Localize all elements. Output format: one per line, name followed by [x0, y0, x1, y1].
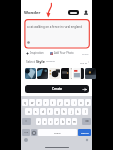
- button[interactable]: h: [61, 108, 67, 115]
- staticText: f: [49, 110, 51, 114]
- button[interactable]: Profile: [83, 10, 89, 16]
- button[interactable]: Create: [25, 85, 89, 93]
- staticText: c: [50, 120, 52, 124]
- staticText: h: [63, 110, 65, 114]
- button[interactable]: n: [66, 118, 71, 125]
- button[interactable]: j: [68, 108, 74, 115]
- staticText: Inspiration: [30, 51, 44, 55]
- staticText: m: [73, 120, 76, 124]
- button[interactable]: z: [36, 118, 41, 125]
- button[interactable]: space: [38, 129, 77, 136]
- staticText: o: [80, 101, 82, 105]
- staticText: ›: [88, 60, 89, 64]
- staticText: u: [66, 101, 68, 105]
- staticText: s: [35, 110, 37, 114]
- staticText: search: [81, 131, 89, 134]
- button[interactable]: [68, 10, 79, 15]
- button[interactable]: v: [54, 118, 59, 125]
- button[interactable]: k: [75, 108, 81, 115]
- staticText: j: [71, 110, 72, 114]
- staticText: a cat walking on a fence in rural englan…: [27, 25, 82, 29]
- button[interactable]: [73, 68, 84, 79]
- staticText: z: [38, 120, 40, 124]
- staticText: x: [44, 120, 46, 124]
- button[interactable]: b: [60, 118, 65, 125]
- staticText: ⌫: [85, 120, 89, 123]
- button[interactable]: [37, 68, 48, 79]
- staticText: 0/300: [82, 52, 89, 55]
- button[interactable]: f: [47, 108, 53, 115]
- button[interactable]: i: [71, 99, 77, 106]
- staticText: w: [31, 101, 34, 105]
- button[interactable]: g: [54, 108, 60, 115]
- staticText: l: [85, 110, 86, 114]
- button[interactable]: Shift: [22, 118, 31, 125]
- staticText: space: [54, 131, 61, 134]
- staticText: e: [38, 101, 40, 105]
- button[interactable]: d: [40, 108, 46, 115]
- button[interactable]: [25, 68, 36, 79]
- button[interactable]: Emoji: [31, 129, 37, 136]
- staticText: p: [87, 101, 89, 105]
- staticText: 123: [24, 131, 28, 134]
- button[interactable]: x: [42, 118, 47, 125]
- staticText: Add Your Photo: [54, 51, 74, 55]
- button[interactable]: search: [78, 129, 91, 136]
- staticText: t: [52, 101, 54, 105]
- button[interactable]: c: [48, 118, 53, 125]
- button[interactable]: e: [36, 99, 42, 106]
- button[interactable]: [85, 68, 96, 79]
- staticText: i: [74, 101, 75, 105]
- button[interactable]: Voice input: [85, 138, 89, 142]
- staticText: n: [68, 120, 70, 124]
- staticText: d: [42, 110, 44, 114]
- staticText: q: [24, 101, 26, 105]
- staticText: ⇧: [25, 120, 28, 123]
- button[interactable]: l: [82, 108, 88, 115]
- button[interactable]: [61, 68, 72, 79]
- button[interactable]: q: [22, 99, 28, 106]
- button[interactable]: t: [50, 99, 56, 106]
- button[interactable]: Backspace: [82, 118, 91, 125]
- button[interactable]: u: [64, 99, 70, 106]
- button[interactable]: 123: [22, 129, 30, 136]
- staticText: v: [56, 120, 58, 124]
- button[interactable]: r: [43, 99, 49, 106]
- button[interactable]: a: [25, 108, 32, 115]
- staticText: k: [77, 110, 79, 114]
- staticText: Create: [52, 87, 63, 91]
- staticText: Style: [36, 59, 45, 64]
- button[interactable]: m: [72, 118, 77, 125]
- staticText: y: [59, 101, 61, 105]
- staticText: See all: [80, 61, 88, 64]
- staticText: b: [62, 120, 64, 124]
- staticText: a: [28, 110, 30, 114]
- staticText: Select: [26, 60, 36, 64]
- button[interactable]: [49, 68, 60, 79]
- staticText: g: [56, 110, 58, 114]
- button[interactable]: Add Your Photo: [50, 51, 74, 55]
- button[interactable]: a cat walking on a fence in rural englan…: [25, 21, 89, 47]
- button[interactable]: s: [33, 108, 39, 115]
- button[interactable]: p: [85, 99, 91, 106]
- staticText: Wonder: [24, 10, 41, 16]
- button[interactable]: Emoji keyboard: [24, 138, 28, 142]
- button[interactable]: o: [78, 99, 84, 106]
- button[interactable]: See all: [80, 60, 89, 64]
- button[interactable]: Inspiration: [26, 51, 44, 55]
- button[interactable]: y: [57, 99, 63, 106]
- staticText: optional: [46, 60, 55, 63]
- staticText: r: [45, 101, 47, 105]
- button[interactable]: w: [29, 99, 35, 106]
